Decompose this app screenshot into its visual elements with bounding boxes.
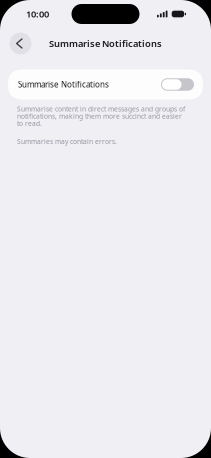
staticText: 10:00 [26, 8, 49, 20]
button[interactable]: Back [9, 32, 31, 54]
staticText: Summarise Notifications [49, 37, 162, 50]
staticText: Summaries may contain errors. [17, 137, 117, 146]
button[interactable]: Summarise Notifications [8, 69, 203, 99]
staticText: Summarise Notifications [18, 79, 109, 90]
staticText: Summarise content in direct messages and… [17, 104, 185, 128]
